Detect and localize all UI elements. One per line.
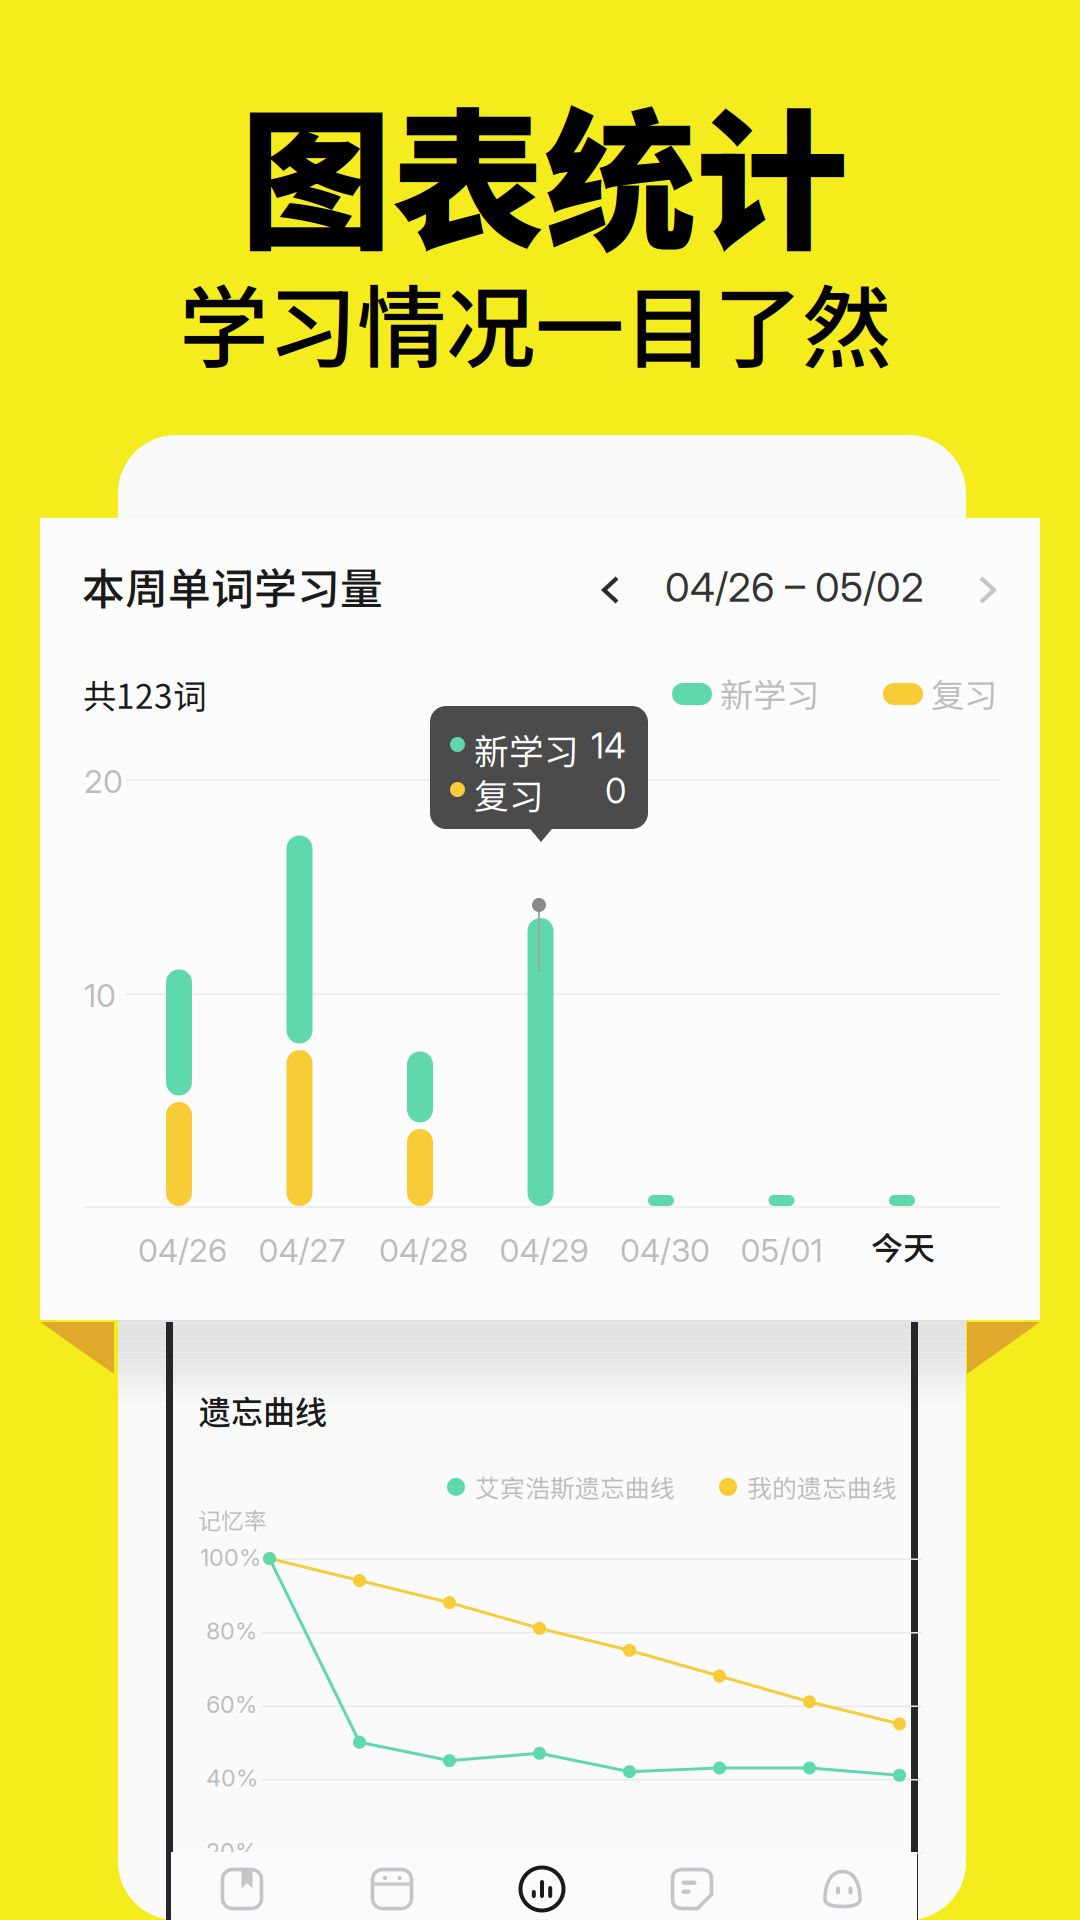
staticText: 20% <box>206 1837 257 1866</box>
staticText: 14 <box>591 725 626 767</box>
button[interactable]: Review <box>317 1853 467 1920</box>
button[interactable]: Profile <box>767 1853 917 1920</box>
staticText: 记忆率 <box>198 1503 267 1536</box>
button[interactable]: Notes <box>617 1853 767 1920</box>
staticText: 复习 <box>474 769 544 819</box>
staticText: 04/28 <box>379 1231 468 1270</box>
staticText: 10 <box>84 976 116 1015</box>
staticText: 我的遗忘曲线 <box>747 1469 897 1505</box>
button[interactable]: Previous week <box>587 568 634 612</box>
staticText: 80% <box>206 1617 257 1645</box>
staticText: 04/29 <box>499 1231 588 1270</box>
staticText: 今天 <box>871 1223 935 1269</box>
staticText: 新学习 <box>720 669 819 717</box>
staticText: 20 <box>84 762 123 801</box>
staticText: 100% <box>200 1543 261 1572</box>
staticText: 艾宾浩斯遗忘曲线 <box>475 1469 675 1505</box>
staticText: 学习情况一目了然 <box>179 257 891 386</box>
staticText: 40% <box>206 1764 258 1792</box>
button[interactable]: Word books <box>167 1853 317 1920</box>
staticText: 新学习 <box>474 724 579 774</box>
staticText: 复习 <box>931 669 997 717</box>
staticText: 04/26 <box>138 1231 227 1270</box>
staticText: 04/27 <box>258 1231 345 1270</box>
button[interactable]: Next week <box>964 568 1011 612</box>
button[interactable]: Statistics <box>467 1853 617 1920</box>
staticText: 60% <box>206 1690 257 1719</box>
staticText: 0 <box>605 770 626 812</box>
staticText: 05/01 <box>740 1231 822 1270</box>
staticText: 图表统计 <box>240 61 848 281</box>
staticText: 本周单词学习量 <box>82 555 383 617</box>
staticText: 共123词 <box>83 670 206 718</box>
staticText: 04/30 <box>620 1231 710 1270</box>
staticText: 遗忘曲线 <box>199 1387 327 1433</box>
staticText: 04/26 – 05/02 <box>665 563 924 611</box>
